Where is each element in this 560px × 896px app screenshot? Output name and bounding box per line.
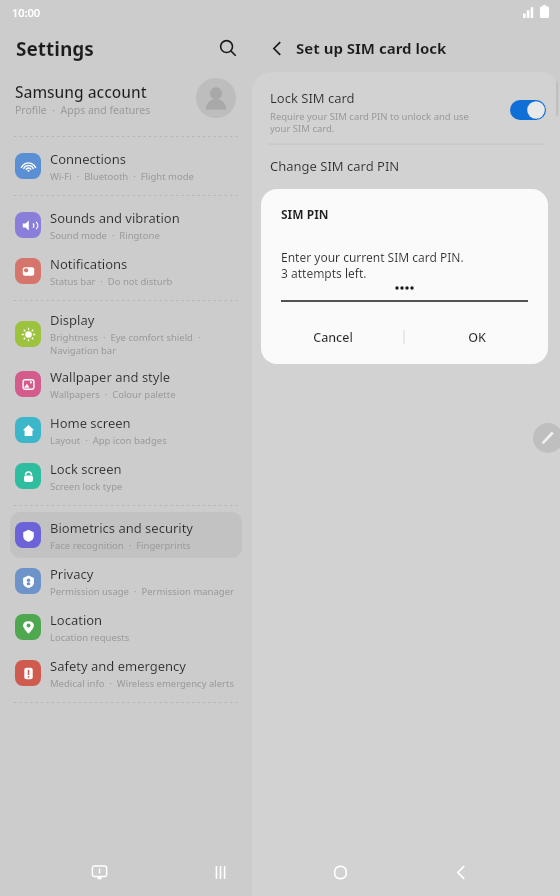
staticText: Enter your current SIM card PIN.	[281, 249, 464, 265]
staticText: Require your SIM card PIN to unlock and …	[270, 110, 490, 135]
staticText: Set up SIM card lock	[296, 38, 447, 58]
staticText: Wallpapers · Colour palette	[50, 388, 176, 401]
staticText: SIM PIN	[281, 206, 329, 222]
button[interactable]: Display	[10, 307, 242, 361]
staticText: Location requests	[50, 631, 130, 644]
staticText: Medical info · Wireless emergency alerts	[50, 677, 235, 690]
staticText: Notifications	[50, 255, 128, 273]
staticText: Navigation bar	[50, 344, 117, 357]
button[interactable]: Screenshot	[77, 850, 121, 894]
button[interactable]: Back	[439, 850, 483, 894]
button[interactable]: Cancel	[261, 320, 404, 354]
staticText: Layout · App icon badges	[50, 434, 167, 447]
staticText: Wallpaper and style	[50, 368, 171, 386]
staticText: Screen lock type	[50, 480, 123, 493]
staticText: Location	[50, 611, 103, 629]
staticText: Lock screen	[50, 460, 122, 478]
button[interactable]: Lock screen	[10, 453, 242, 499]
staticText: OK	[468, 329, 486, 346]
staticText: Biometrics and security	[50, 519, 194, 537]
staticText: Lock SIM card	[270, 89, 355, 107]
staticText: 3 attempts left.	[281, 265, 367, 281]
button[interactable]: Notifications	[10, 248, 242, 294]
button[interactable]: Connections	[10, 143, 242, 189]
button[interactable]: Wallpaper and style	[10, 361, 242, 407]
staticText: Wi-Fi · Bluetooth · Flight mode	[50, 170, 194, 183]
staticText: Samsung account	[15, 81, 147, 102]
button[interactable]: OK	[405, 320, 548, 354]
staticText: Sounds and vibration	[50, 209, 180, 227]
button[interactable]: Home screen	[10, 407, 242, 453]
button[interactable]: Recents	[198, 850, 242, 894]
staticText: Change SIM card PIN	[270, 157, 400, 175]
button[interactable]: Home	[318, 850, 362, 894]
button[interactable]: Biometrics and security	[10, 512, 242, 558]
button[interactable]: Safety and emergency	[10, 650, 242, 696]
staticText: Connections	[50, 150, 126, 168]
button[interactable]: Samsung account	[0, 72, 252, 130]
staticText: Settings	[16, 36, 94, 62]
staticText: Privacy	[50, 565, 94, 583]
button[interactable]: Edit	[533, 423, 560, 453]
staticText: Brightness · Eye comfort shield ·	[50, 331, 201, 344]
button[interactable]: Privacy	[10, 558, 242, 604]
button[interactable]: Lock SIM card	[252, 82, 560, 144]
button[interactable]: Sounds and vibration	[10, 202, 242, 248]
button[interactable]: Change SIM card PIN	[252, 145, 560, 183]
button[interactable]: Lock SIM card toggle	[510, 100, 546, 120]
button[interactable]: Location	[10, 604, 242, 650]
staticText: Profile · Apps and features	[15, 103, 151, 117]
staticText: Home screen	[50, 414, 131, 432]
staticText: Status bar · Do not disturb	[50, 275, 173, 288]
staticText: 10:00	[12, 5, 41, 20]
staticText: Face recognition · Fingerprints	[50, 539, 191, 552]
button[interactable]: Search	[210, 30, 246, 66]
staticText: Sound mode · Ringtone	[50, 229, 160, 242]
staticText: Permission usage · Permission manager	[50, 585, 234, 598]
staticText: Cancel	[313, 329, 353, 346]
button[interactable]: Back	[260, 31, 294, 65]
staticText: Display	[50, 311, 95, 329]
staticText: Safety and emergency	[50, 657, 186, 675]
